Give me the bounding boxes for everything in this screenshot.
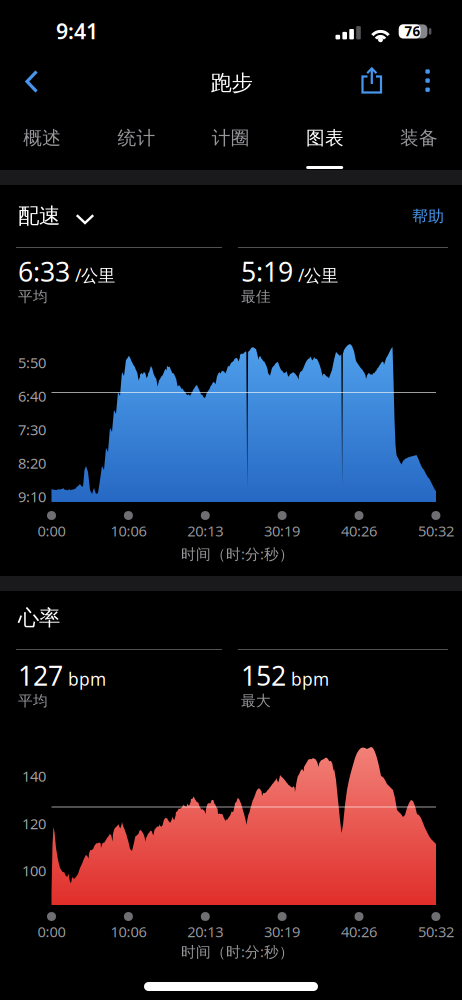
staticText: 9:10 [18,487,46,506]
staticText: /公里 [75,264,115,287]
staticText: 50:32 [418,521,454,540]
staticText: 时间（时:分:秒） [181,544,294,563]
staticText: 配速 [18,203,60,229]
staticText: /公里 [298,264,338,287]
staticText: 最佳 [241,288,271,306]
button[interactable]: 帮助 [344,201,444,231]
staticText: 9:41 [56,17,98,45]
staticText: bpm [68,668,106,691]
staticText: 152 [241,658,286,693]
staticText: bpm [291,668,329,691]
staticText: 100 [22,861,46,880]
staticText: 30:19 [264,922,300,941]
button[interactable]: More [413,59,443,103]
staticText: 0:00 [37,521,65,540]
staticText: 6:40 [18,386,46,406]
staticText: 10:06 [110,521,146,540]
staticText: 5:50 [18,353,46,372]
button[interactable]: 配速选择 [18,201,218,231]
staticText: 时间（时:分:秒） [181,942,294,961]
staticText: 140 [22,766,46,786]
button[interactable]: 概述 [0,117,88,159]
staticText: 7:30 [18,420,46,439]
staticText: 装备 [400,126,438,149]
staticText: 6:33 [18,254,70,289]
button[interactable]: 图表 [279,117,371,159]
button[interactable]: Share [350,58,394,102]
staticText: 76 [405,22,421,40]
staticText: 127 [18,658,63,693]
staticText: 120 [22,814,46,833]
staticText: 帮助 [412,207,444,226]
staticText: 20:13 [187,521,223,540]
staticText: 5:19 [241,254,293,289]
staticText: 40:26 [341,521,377,540]
button[interactable]: 计圈 [185,117,277,159]
staticText: 最大 [241,692,271,710]
staticText: 30:19 [264,521,300,540]
staticText: 10:06 [110,922,146,941]
staticText: 计圈 [212,126,250,149]
button[interactable]: 统计 [90,117,182,159]
staticText: 0:00 [37,922,65,941]
button[interactable]: Back [9,59,53,103]
staticText: 50:32 [418,922,454,941]
staticText: 20:13 [187,922,223,941]
staticText: 心率 [18,605,60,631]
staticText: 40:26 [341,922,377,941]
staticText: 平均 [18,692,48,710]
button[interactable]: 装备 [373,117,462,159]
staticText: 8:20 [18,453,46,473]
staticText: 平均 [18,288,48,306]
staticText: 统计 [117,126,155,149]
staticText: 概述 [23,126,61,149]
staticText: 图表 [306,126,344,149]
staticText: 跑步 [210,70,252,96]
